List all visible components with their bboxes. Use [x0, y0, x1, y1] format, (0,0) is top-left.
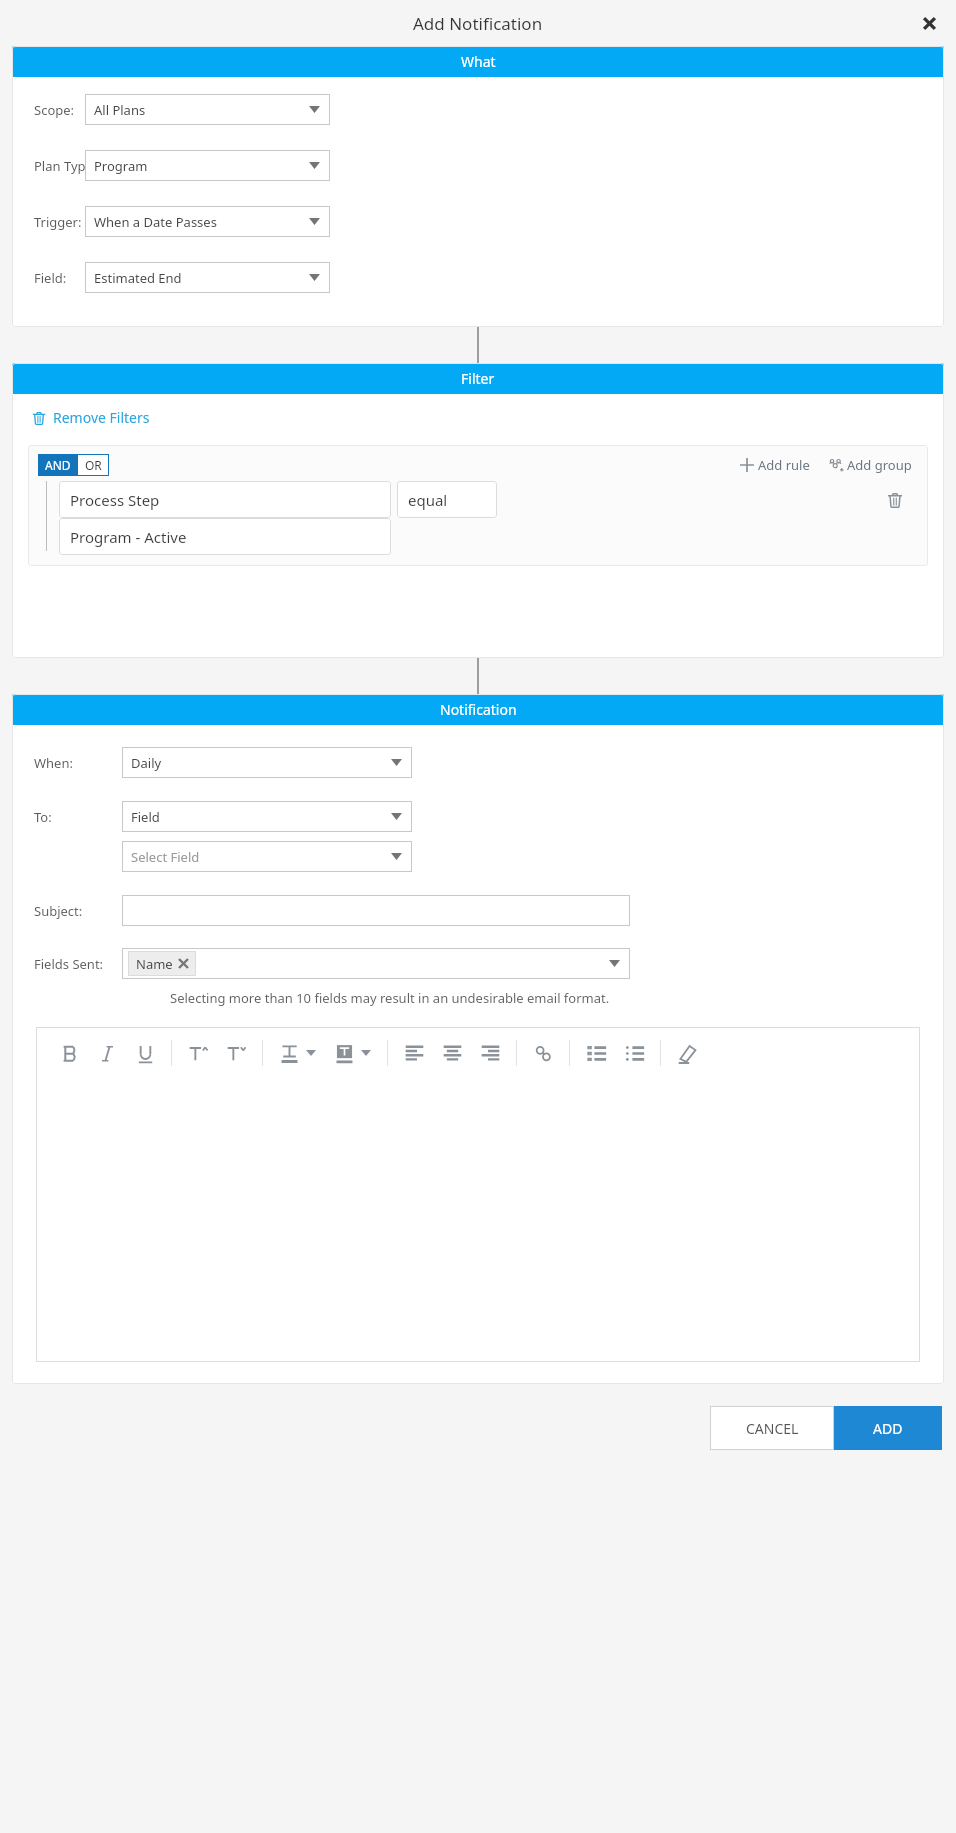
button[interactable]: Increase font size — [179, 1034, 217, 1072]
staticText: CANCEL — [746, 1419, 799, 1438]
staticText: Scope: — [34, 101, 75, 119]
staticText: ADD — [873, 1419, 903, 1438]
staticText: Trigger: — [34, 213, 82, 231]
button[interactable]: Align right — [471, 1034, 509, 1072]
staticText: When: — [34, 754, 73, 772]
staticText: Program — [94, 157, 148, 175]
button[interactable]: Align center — [433, 1034, 471, 1072]
button[interactable]: Field — [122, 801, 412, 832]
button[interactable]: Estimated End — [85, 262, 330, 293]
staticText: Estimated End — [94, 269, 182, 287]
staticText: To: — [34, 808, 52, 826]
button[interactable]: Delete rule — [880, 485, 910, 515]
button[interactable] — [122, 895, 630, 926]
staticText: Program - Active — [70, 527, 187, 547]
button[interactable]: Bulleted list — [615, 1034, 653, 1072]
staticText: Plan Type: — [34, 157, 97, 175]
button[interactable]: OR — [78, 454, 109, 476]
button[interactable]: Program — [85, 150, 330, 181]
staticText: Notification — [440, 700, 517, 719]
staticText: All Plans — [94, 101, 146, 119]
staticText: Add Notification — [413, 12, 543, 35]
staticText: Add rule — [758, 456, 810, 474]
button[interactable]: Program - Active — [59, 518, 391, 555]
staticText: Select Field — [131, 848, 200, 866]
staticText: AND — [45, 457, 71, 473]
button[interactable]: Bold — [50, 1034, 88, 1072]
staticText: When a Date Passes — [94, 213, 217, 231]
button[interactable]: equal — [397, 481, 497, 518]
button[interactable]: Italic — [88, 1034, 126, 1072]
button[interactable]: Add rule — [739, 456, 810, 474]
button[interactable]: Name — [122, 948, 630, 979]
button[interactable]: ADD — [834, 1406, 942, 1450]
button[interactable]: Add group — [828, 456, 912, 474]
button[interactable]: Remove Filters — [32, 408, 150, 427]
staticText: OR — [85, 457, 102, 473]
staticText: Add group — [847, 456, 912, 474]
button[interactable]: Highlight color — [325, 1034, 380, 1072]
button[interactable]: Numbered list — [577, 1034, 615, 1072]
button[interactable]: AND — [38, 454, 78, 476]
button[interactable]: All Plans — [85, 94, 330, 125]
staticText: Selecting more than 10 fields may result… — [170, 989, 610, 1007]
staticText: Process Step — [70, 490, 160, 510]
staticText: equal — [408, 490, 448, 510]
button[interactable]: Insert link — [524, 1034, 562, 1072]
button[interactable]: Clear formatting — [668, 1034, 706, 1072]
button[interactable]: Decrease font size — [217, 1034, 255, 1072]
button[interactable]: Daily — [122, 747, 412, 778]
button[interactable]: Align left — [395, 1034, 433, 1072]
button[interactable]: Select Field — [122, 841, 412, 872]
button[interactable]: Underline — [126, 1034, 164, 1072]
staticText: What — [461, 52, 496, 71]
staticText: Name — [136, 955, 173, 973]
staticText: Subject: — [34, 902, 83, 920]
staticText: Fields Sent: — [34, 955, 104, 973]
staticText: Daily — [131, 754, 162, 772]
staticText: Field — [131, 808, 160, 826]
staticText: Field: — [34, 269, 67, 287]
button[interactable]: When a Date Passes — [85, 206, 330, 237]
staticText: Remove Filters — [53, 408, 150, 427]
button[interactable]: Close — [912, 6, 946, 40]
button[interactable]: CANCEL — [710, 1406, 834, 1450]
button[interactable]: Text color — [270, 1034, 325, 1072]
button[interactable]: Process Step — [59, 481, 391, 518]
staticText: Filter — [461, 369, 495, 388]
